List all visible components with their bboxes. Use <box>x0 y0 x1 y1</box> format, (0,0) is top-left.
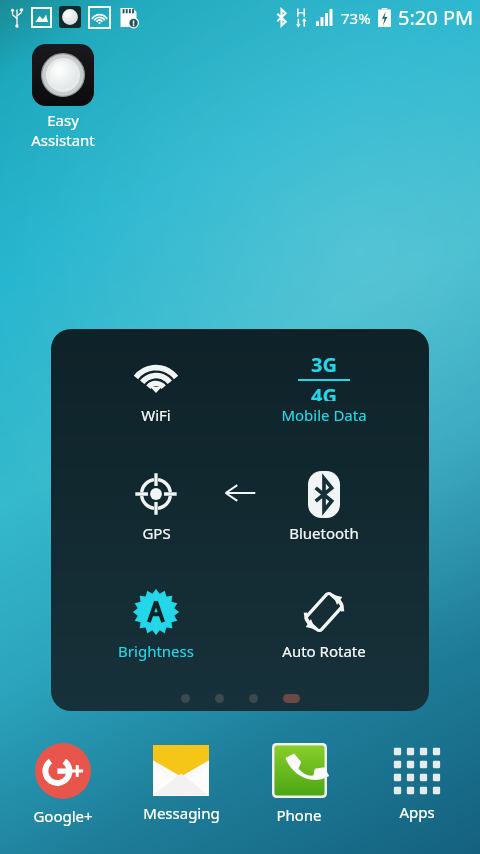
staticText: 73% <box>341 8 371 28</box>
staticText: Apps <box>399 802 435 822</box>
button[interactable]: Messaging <box>126 743 236 823</box>
staticText: 5:20 PM <box>398 4 474 31</box>
button[interactable]: Apps <box>362 743 472 822</box>
button[interactable]: GPS toggle <box>93 469 219 543</box>
button[interactable]: Page 1 <box>181 694 190 703</box>
staticText: Google+ <box>33 806 93 826</box>
button[interactable]: Page 3 <box>249 694 258 703</box>
button[interactable]: Phone <box>244 743 354 825</box>
button[interactable]: Google Plus <box>8 743 118 826</box>
button[interactable]: Auto Rotate toggle <box>261 587 387 661</box>
button[interactable]: Mobile Data toggle <box>261 351 387 425</box>
button[interactable]: Page 2 <box>215 694 224 703</box>
staticText: Easy Assistant <box>31 110 95 150</box>
staticText: WiFi <box>141 405 171 425</box>
staticText: Messaging <box>143 803 220 823</box>
staticText: GPS <box>142 523 171 543</box>
staticText: 3G <box>311 351 337 378</box>
button[interactable]: Brightness toggle <box>93 587 219 661</box>
staticText: Phone <box>276 805 322 825</box>
button[interactable]: Easy Assistant <box>18 44 108 150</box>
button[interactable]: Previous page <box>222 480 258 506</box>
button[interactable]: Bluetooth toggle <box>261 469 387 543</box>
staticText: 4G <box>311 382 337 401</box>
button[interactable]: WiFi toggle <box>93 351 219 425</box>
button[interactable]: Page 4, current <box>283 694 300 703</box>
staticText: Mobile Data <box>281 405 367 425</box>
staticText: Bluetooth <box>289 523 359 543</box>
staticText: Auto Rotate <box>282 641 366 661</box>
staticText: Brightness <box>118 641 194 661</box>
